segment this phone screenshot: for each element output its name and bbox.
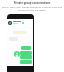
button[interactable] xyxy=(21,46,31,50)
button[interactable]: Group photo xyxy=(14,51,20,57)
button[interactable] xyxy=(20,55,32,59)
button[interactable]: Online xyxy=(8,19,32,26)
button[interactable] xyxy=(20,60,32,64)
staticText: Stay in touch with friends and family in… xyxy=(1,6,63,12)
staticText: Private group conversations xyxy=(1,1,63,5)
button[interactable] xyxy=(20,51,32,55)
